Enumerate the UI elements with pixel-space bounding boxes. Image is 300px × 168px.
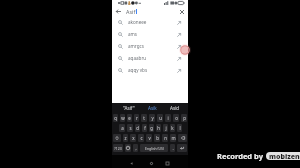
button[interactable]: p — [181, 114, 187, 122]
button[interactable]: Home — [147, 159, 156, 168]
button[interactable]: q — [113, 114, 118, 122]
button[interactable]: Clear search — [178, 8, 186, 16]
staticText: a — [121, 125, 124, 131]
button[interactable]: Asid — [163, 103, 188, 113]
staticText: y — [151, 115, 154, 121]
staticText: e — [128, 115, 131, 121]
button[interactable] — [177, 144, 187, 152]
button[interactable]: akoneee — [112, 16, 188, 28]
staticText: x — [132, 135, 135, 141]
staticText: h — [157, 125, 160, 131]
button[interactable] — [178, 134, 187, 142]
staticText: k — [171, 125, 174, 131]
staticText: Asif — [126, 8, 136, 15]
button[interactable]: t — [141, 114, 147, 122]
button[interactable]: e — [127, 114, 132, 122]
button[interactable]: m — [170, 134, 176, 142]
button[interactable]: o — [173, 114, 179, 122]
staticText: n — [164, 135, 167, 141]
button[interactable]: c — [138, 134, 144, 142]
staticText: . — [172, 145, 174, 151]
button[interactable]: Recent apps — [163, 159, 172, 168]
staticText: English (US) — [145, 146, 164, 151]
staticText: q — [114, 115, 117, 121]
button[interactable]: amrgcs — [112, 40, 188, 52]
staticText: s — [129, 125, 132, 131]
staticText: z — [124, 135, 127, 141]
staticText: "Asif" — [123, 105, 135, 111]
staticText: v — [148, 135, 151, 141]
button[interactable]: a — [119, 124, 125, 132]
staticText: d — [136, 125, 139, 131]
button[interactable]: "Asif" — [112, 103, 138, 113]
staticText: , — [135, 145, 137, 151]
staticText: mobizen — [269, 152, 300, 160]
staticText: b — [156, 135, 159, 141]
button[interactable]: Back — [115, 8, 122, 15]
button[interactable]: f — [142, 124, 147, 132]
button[interactable]: , — [133, 144, 138, 152]
button[interactable]: h — [156, 124, 161, 132]
button[interactable]: . — [170, 144, 175, 152]
button[interactable]: Insert suggestion — [175, 19, 182, 26]
button[interactable]: w — [120, 114, 125, 122]
button[interactable]: l — [177, 124, 182, 132]
button[interactable]: j — [163, 124, 168, 132]
staticText: i — [167, 115, 169, 121]
button[interactable]: Insert suggestion — [175, 67, 182, 74]
button[interactable]: Insert suggestion — [175, 31, 182, 38]
staticText: Asik — [148, 105, 157, 111]
button[interactable]: i — [165, 114, 171, 122]
button[interactable]: Asik — [138, 103, 163, 113]
button[interactable]: y — [149, 114, 155, 122]
button[interactable]: z — [123, 134, 128, 142]
staticText: g — [150, 125, 153, 131]
button[interactable]: b — [154, 134, 160, 142]
staticText: w — [121, 115, 125, 121]
button[interactable]: k — [170, 124, 175, 132]
staticText: ams — [128, 31, 138, 37]
button[interactable]: ?123 — [113, 144, 123, 152]
button[interactable]: Insert suggestion — [175, 55, 182, 62]
button[interactable]: Back — [127, 159, 136, 168]
button[interactable]: Insert suggestion — [175, 43, 182, 50]
button[interactable]: aqaabru — [112, 52, 188, 64]
staticText: r — [136, 115, 138, 121]
staticText: j — [165, 125, 167, 131]
staticText: aqqy vbs — [128, 67, 148, 73]
button[interactable]: English (US) — [140, 144, 168, 152]
staticText: f — [144, 125, 146, 131]
staticText: akoneee — [128, 19, 147, 25]
button[interactable]: g — [149, 124, 154, 132]
button[interactable] — [113, 134, 121, 142]
button[interactable]: s — [127, 124, 133, 132]
button[interactable]: n — [162, 134, 168, 142]
staticText: amrgcs — [128, 43, 144, 49]
staticText: l — [179, 125, 181, 131]
button[interactable]: ams — [112, 28, 188, 40]
button[interactable]: d — [135, 124, 140, 132]
button[interactable]: u — [157, 114, 163, 122]
staticText: aqaabru — [128, 55, 147, 61]
staticText: m — [171, 135, 176, 141]
button[interactable]: v — [146, 134, 152, 142]
button[interactable]: aqqy vbs — [112, 64, 188, 76]
staticText: Recorded by — [217, 151, 263, 161]
staticText: t — [143, 115, 145, 121]
staticText: Asid — [170, 105, 180, 111]
staticText: c — [140, 135, 143, 141]
staticText: ?123 — [114, 146, 122, 151]
staticText: u — [159, 115, 162, 121]
staticText: o — [175, 115, 178, 121]
button[interactable]: r — [134, 114, 139, 122]
button[interactable]: x — [130, 134, 136, 142]
button[interactable] — [125, 144, 131, 152]
staticText: p — [183, 115, 186, 121]
